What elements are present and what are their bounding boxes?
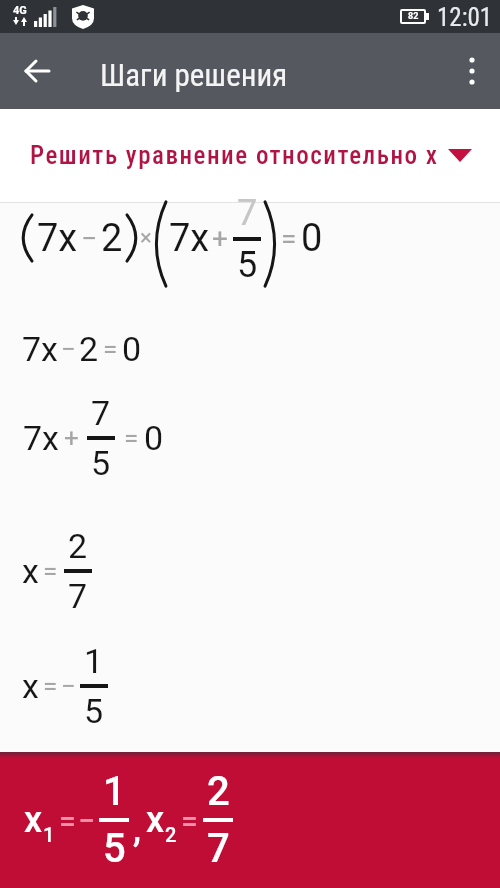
staticText: 7x [169,216,210,261]
staticText: − [61,671,76,701]
staticText: x [22,551,39,591]
staticText: 7 [68,576,88,616]
staticText: = [181,803,198,838]
staticText: 2 [79,329,99,369]
staticText: = [124,423,139,453]
staticText: 1 [103,768,126,815]
staticText: 2 [165,823,177,846]
staticText: 7 [237,192,258,234]
staticText: Решить уравнение относительно x [30,141,439,170]
staticText: + [64,423,79,453]
staticText: − [81,222,98,255]
staticText: x [146,799,165,841]
staticText: x [22,666,39,706]
button[interactable]: Решить уравнение относительно x [0,109,500,202]
staticText: − [78,803,95,838]
staticText: = [281,222,297,255]
staticText: + [212,222,228,255]
staticText: 2 [207,768,230,815]
button[interactable] [448,47,496,95]
staticText: 5 [237,244,258,284]
staticText: = [43,671,58,701]
staticText: 0 [122,329,142,369]
staticText: − [61,334,76,364]
staticText: 7x [37,216,78,261]
staticText: , [133,808,141,850]
staticText: 82 [408,11,419,22]
staticText: 5 [91,443,111,483]
staticText: = [43,556,58,586]
staticText: 5 [103,825,126,872]
staticText: 1 [43,823,55,846]
staticText: = [103,334,118,364]
staticText: 5 [84,691,104,731]
staticText: 4G [13,4,27,17]
staticText: 0 [301,216,323,261]
staticText: 7 [207,825,230,872]
staticText: 7x [23,418,59,458]
staticText: 7 [91,393,111,433]
staticText: 7x [22,329,58,369]
staticText: 12:01 [437,3,493,32]
staticText: x [24,799,43,841]
staticText: 1 [84,641,104,681]
staticText: 2 [68,526,88,566]
staticText: × [140,225,152,251]
staticText: 0 [144,418,164,458]
staticText: = [59,803,76,838]
button[interactable] [14,47,62,95]
staticText: Шаги решения [100,57,288,93]
staticText: 2 [101,216,123,261]
